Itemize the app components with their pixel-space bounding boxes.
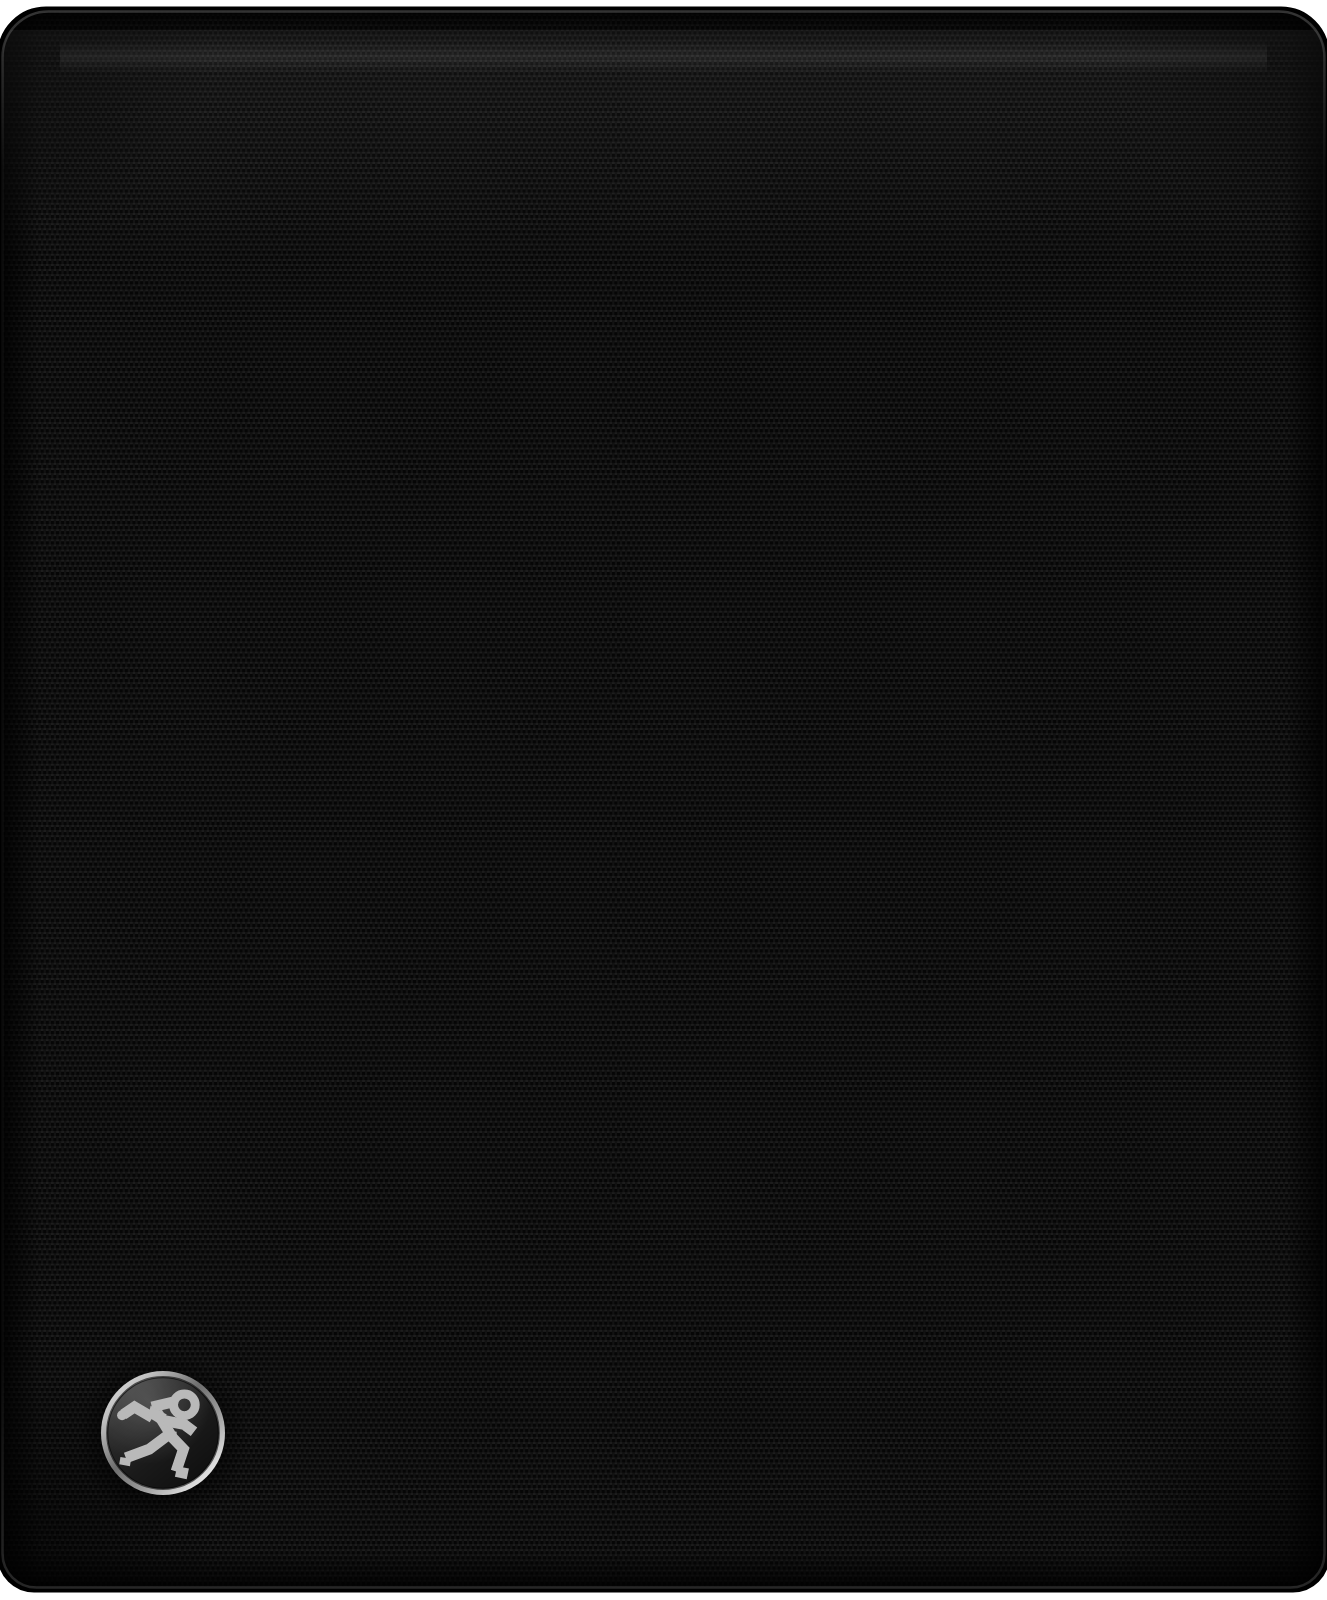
button[interactable]: Mackie speaker grille: [0, 0, 1327, 1600]
